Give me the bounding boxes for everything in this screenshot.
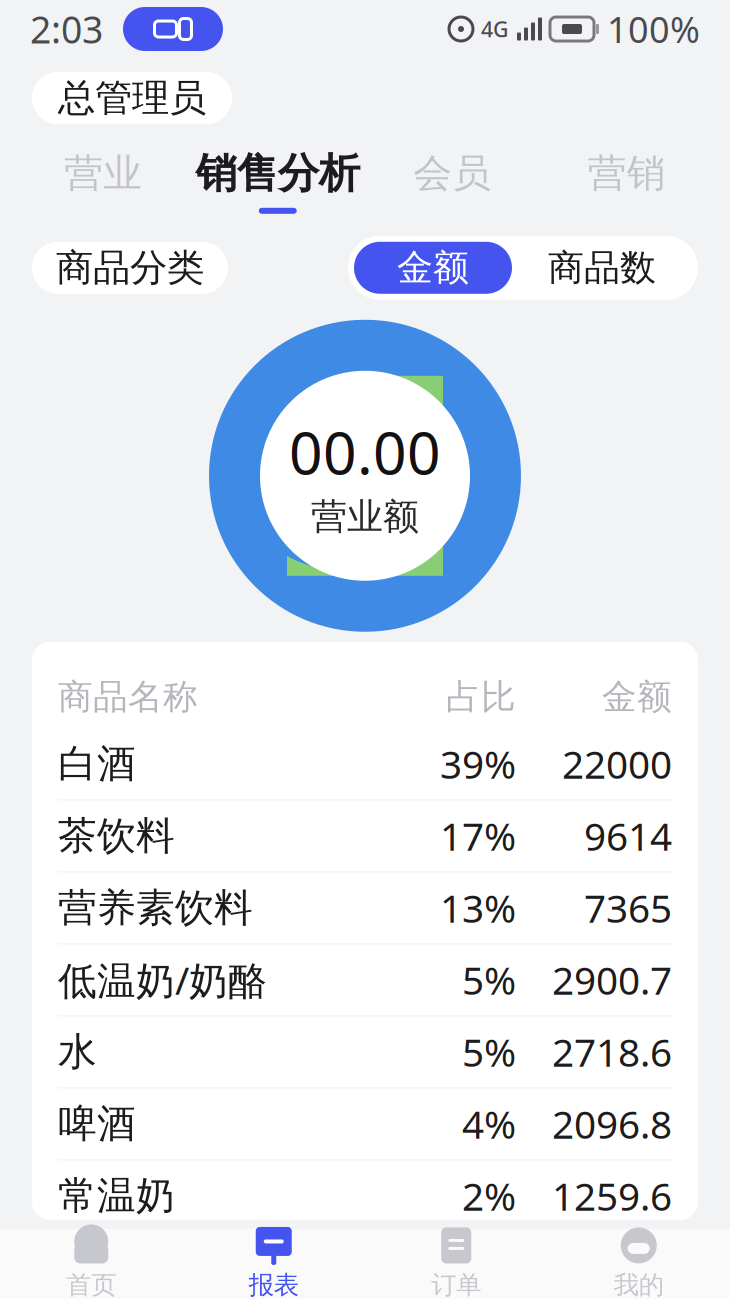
staticText: 5% [462, 1026, 516, 1077]
staticText: 2096.8 [552, 1098, 672, 1149]
button[interactable]: 金额 [354, 242, 512, 294]
staticText: 2% [462, 1170, 516, 1221]
button[interactable]: 茶饮料 [32, 800, 698, 871]
staticText: 2718.6 [552, 1026, 672, 1077]
staticText: 总管理员 [58, 75, 206, 121]
staticText: 首页 [66, 1269, 116, 1299]
staticText: 2:03 [30, 4, 103, 54]
button[interactable]: 商品数 [512, 242, 692, 294]
staticText: 低温奶/奶酪 [58, 954, 267, 1005]
button[interactable]: 营业 [16, 146, 190, 216]
staticText: 4G [481, 15, 509, 43]
staticText: 金额 [602, 676, 672, 718]
staticText: 金额 [397, 246, 469, 290]
staticText: 销售分析 [196, 148, 360, 199]
staticText: 会员 [413, 150, 491, 197]
staticText: 00.00 [289, 413, 441, 491]
staticText: 商品分类 [56, 245, 204, 291]
staticText: 报表 [249, 1269, 299, 1299]
staticText: 商品名称 [58, 676, 198, 718]
button[interactable]: 我的 [547, 1229, 730, 1299]
button[interactable]: 总管理员 [32, 72, 232, 124]
staticText: 22000 [562, 738, 672, 789]
staticText: 啤酒 [58, 1100, 136, 1148]
staticText: 100% [607, 5, 700, 53]
button[interactable]: 销售分析 [190, 144, 365, 218]
staticText: 茶饮料 [58, 812, 175, 860]
button[interactable]: 白酒 [32, 728, 698, 799]
staticText: 订单 [431, 1269, 481, 1299]
button[interactable]: 首页 [0, 1229, 182, 1299]
staticText: 营业额 [311, 495, 419, 539]
staticText: 4% [462, 1098, 516, 1149]
button[interactable]: 会员 [365, 146, 539, 216]
staticText: 1259.6 [552, 1170, 672, 1221]
button[interactable]: 订单 [365, 1229, 547, 1299]
button[interactable]: 营养素饮料 [32, 872, 698, 943]
staticText: 13% [440, 882, 516, 933]
staticText: 商品数 [548, 246, 656, 290]
staticText: 水 [58, 1028, 97, 1076]
staticText: 占比 [446, 676, 516, 718]
staticText: 营养素饮料 [58, 884, 253, 932]
button[interactable]: 营销 [539, 146, 714, 216]
staticText: 39% [440, 738, 516, 789]
staticText: 9614 [584, 810, 672, 861]
button[interactable]: 常温奶 [32, 1160, 698, 1231]
button[interactable]: 商品分类 [32, 242, 228, 294]
button[interactable]: 低温奶/奶酪 [32, 944, 698, 1015]
staticText: 常温奶 [58, 1172, 175, 1220]
staticText: 营销 [588, 150, 666, 197]
staticText: 17% [440, 810, 516, 861]
staticText: 7365 [584, 882, 672, 933]
button[interactable]: 报表 [182, 1229, 365, 1299]
button[interactable]: 水 [32, 1016, 698, 1087]
staticText: 白酒 [58, 740, 136, 788]
staticText: 营业 [64, 150, 142, 197]
staticText: 2900.7 [552, 954, 672, 1005]
button[interactable]: 啤酒 [32, 1088, 698, 1159]
staticText: 我的 [614, 1269, 664, 1299]
staticText: 5% [462, 954, 516, 1005]
